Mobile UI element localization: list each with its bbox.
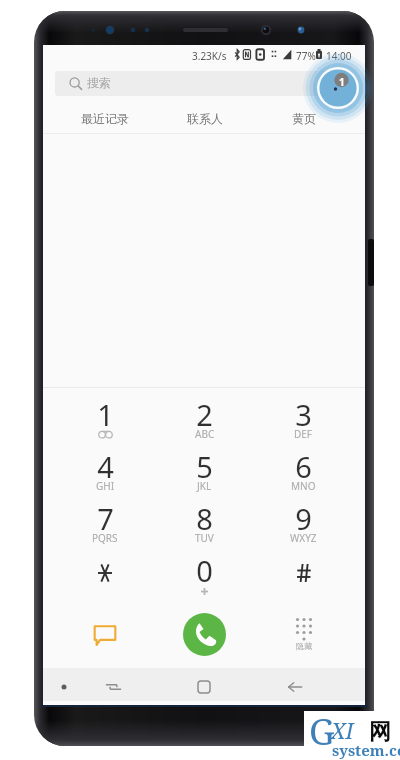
button[interactable]: Back [277, 668, 313, 705]
staticText: WXYZ [290, 531, 317, 545]
button[interactable]: 1 [55, 393, 155, 445]
staticText: 黄页 [292, 111, 316, 126]
button[interactable]: 3 [254, 393, 353, 445]
staticText: TUV [195, 531, 214, 545]
staticText: 8 [196, 499, 213, 538]
staticText: 2 [196, 395, 213, 434]
staticText: MNO [291, 479, 316, 493]
button[interactable]: 搜索 [55, 71, 353, 96]
button[interactable]: 8 [155, 497, 254, 549]
staticText: 搜索 [87, 75, 111, 90]
staticText: 1 [339, 75, 345, 89]
button[interactable]: 2 [155, 393, 254, 445]
button[interactable]: 4 [55, 445, 155, 497]
button[interactable]: 7 [55, 497, 155, 549]
staticText: 网 [369, 718, 391, 746]
button[interactable]: 黄页 [254, 106, 353, 131]
staticText: XI [331, 715, 354, 745]
staticText: DEF [294, 427, 313, 441]
staticText: 最近记录 [81, 111, 129, 126]
button[interactable]: 联系人 [155, 106, 254, 131]
staticText: JKL [197, 479, 212, 493]
button[interactable]: 0 [155, 549, 254, 601]
staticText: 6 [295, 447, 312, 486]
staticText: 14:00 [326, 49, 352, 63]
button[interactable]: 5 [155, 445, 254, 497]
staticText: 5 [196, 447, 213, 486]
button[interactable]: Hide keypad [254, 601, 353, 673]
staticText: 3 [295, 395, 312, 434]
staticText: 77% [296, 49, 316, 63]
staticText: 3.23K/s [192, 49, 227, 63]
staticText: GHI [96, 479, 115, 493]
button[interactable]: Call [155, 601, 254, 673]
staticText: 9 [295, 499, 312, 538]
button[interactable]: 6 [254, 445, 353, 497]
staticText: 联系人 [187, 111, 223, 126]
button[interactable] [55, 549, 155, 601]
staticText: 7 [97, 499, 114, 538]
staticText: 0 [196, 551, 213, 590]
button[interactable] [254, 549, 353, 601]
button[interactable]: Recents [95, 668, 131, 705]
staticText: G [309, 707, 335, 756]
button[interactable]: 9 [254, 497, 353, 549]
staticText: 1 [97, 395, 114, 434]
button[interactable]: Home [186, 668, 222, 705]
staticText: 隐藏 [296, 641, 312, 651]
staticText: PQRS [92, 531, 118, 545]
staticText: system.com [332, 740, 400, 760]
staticText: ABC [195, 427, 215, 441]
button[interactable]: Send message [55, 601, 155, 673]
staticText: 4 [97, 447, 114, 486]
button[interactable]: Menu [52, 668, 76, 705]
button[interactable]: 最近记录 [55, 106, 155, 131]
